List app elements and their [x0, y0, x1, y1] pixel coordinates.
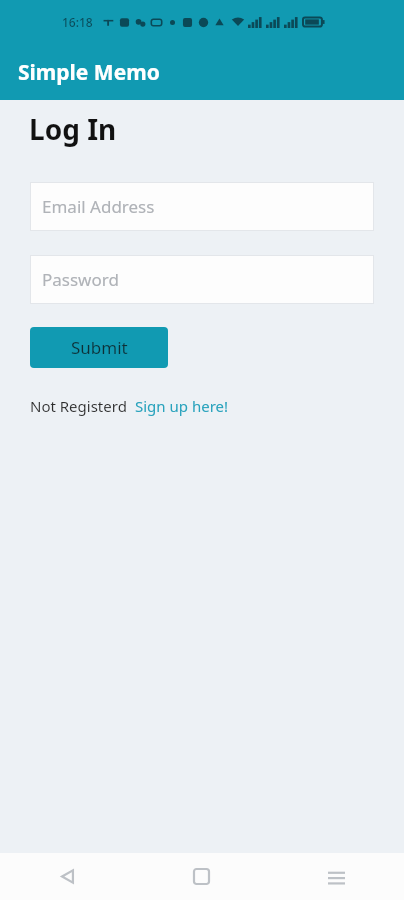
staticText: 16:18 — [62, 14, 93, 30]
staticText: Email Address — [42, 195, 155, 218]
staticText: Not Registerd — [30, 396, 127, 416]
staticText: Password — [42, 268, 119, 291]
staticText: Simple Memo — [18, 58, 160, 87]
staticText: Log In — [29, 110, 117, 148]
button[interactable]: Back — [0, 853, 134, 900]
staticText: Submit — [71, 336, 128, 359]
button[interactable]: Recent apps — [269, 853, 404, 900]
button[interactable]: Password — [30, 255, 374, 304]
button[interactable]: Home — [134, 853, 269, 900]
button[interactable]: Email Address — [30, 182, 374, 231]
button[interactable]: Sign up here! — [135, 396, 229, 416]
staticText: Sign up here! — [135, 396, 229, 416]
button[interactable]: Submit — [30, 327, 168, 368]
